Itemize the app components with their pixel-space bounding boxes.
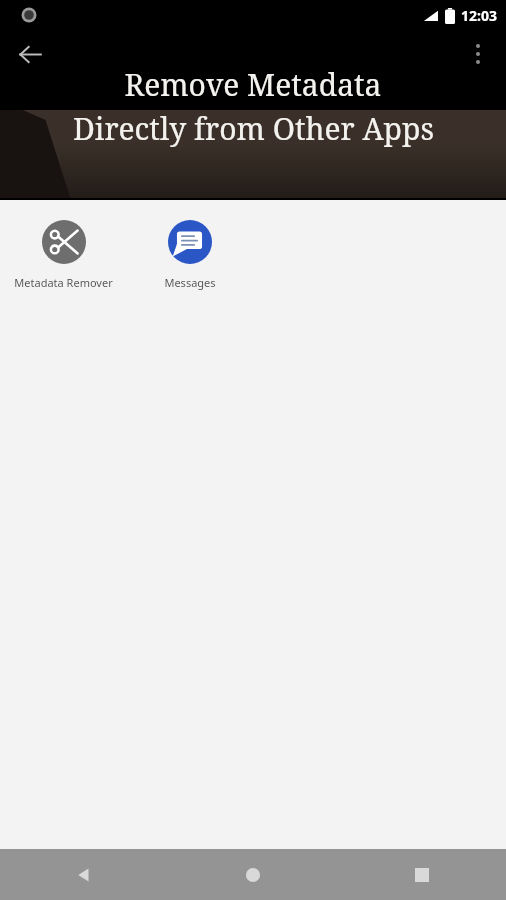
button[interactable]: Recent apps bbox=[337, 849, 506, 900]
button[interactable]: Back bbox=[8, 32, 52, 76]
button[interactable]: Back bbox=[0, 849, 168, 900]
staticText: Metadata Remover bbox=[14, 275, 113, 290]
staticText: Remove Metadata bbox=[124, 64, 382, 105]
staticText: 12:03 bbox=[461, 6, 497, 25]
staticText: Directly from Other Apps bbox=[73, 108, 434, 149]
button[interactable]: Messages bbox=[135, 210, 245, 298]
staticText: Messages bbox=[164, 275, 216, 290]
button[interactable]: Home bbox=[168, 849, 337, 900]
button[interactable]: Metadata Remover bbox=[8, 210, 118, 298]
button[interactable]: More options bbox=[456, 32, 500, 76]
